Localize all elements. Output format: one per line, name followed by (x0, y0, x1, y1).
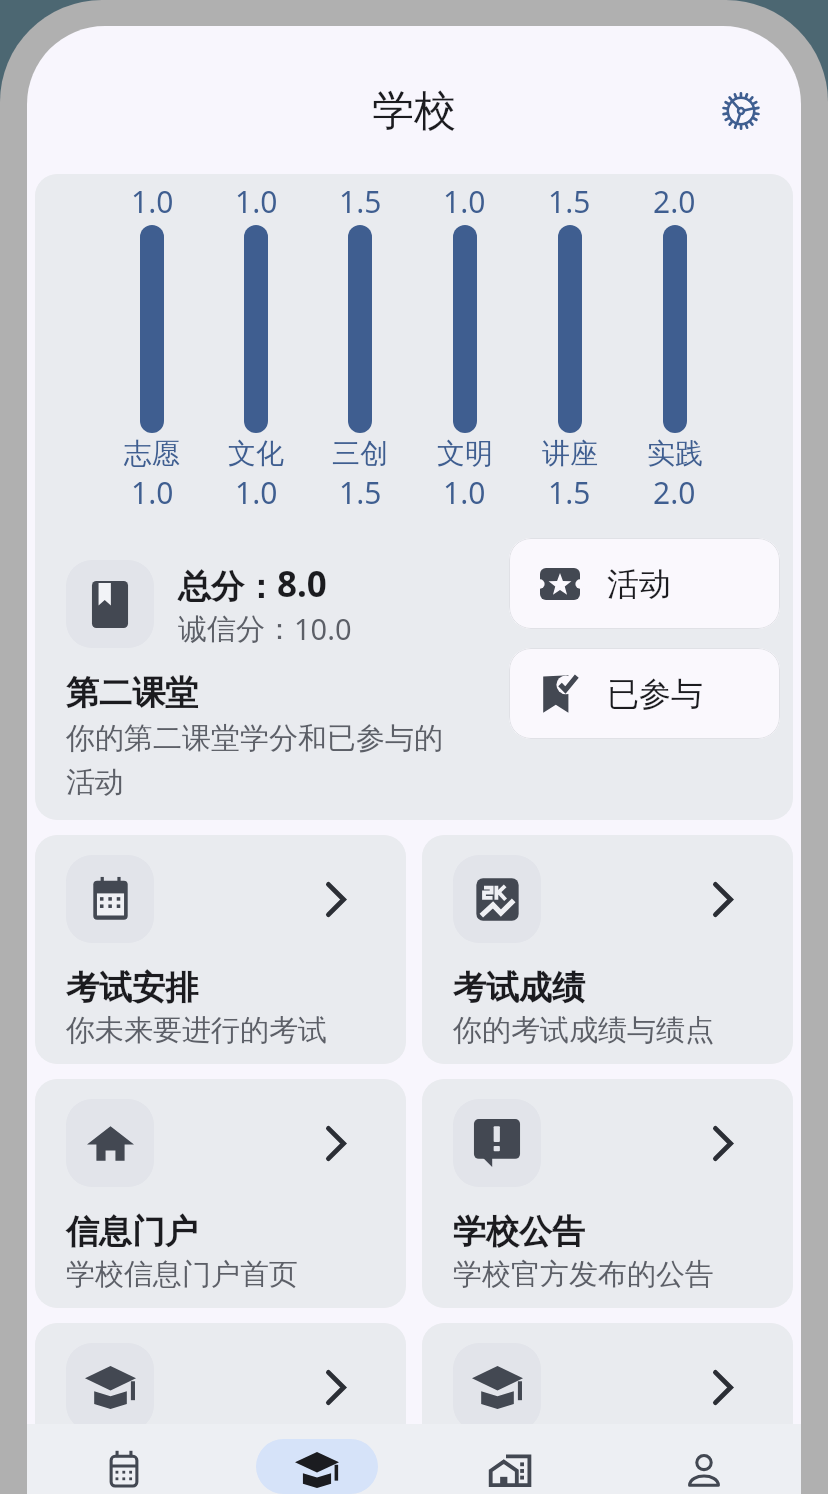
staticText: 文明 (437, 436, 493, 471)
button[interactable]: 教务系统 (35, 1323, 406, 1494)
button[interactable]: 考试成绩 (422, 835, 793, 1064)
staticText: 2.0 (653, 181, 696, 222)
staticText: 文化 (228, 436, 284, 471)
staticText: 三创 (332, 436, 388, 471)
staticText: 已参与 (607, 674, 703, 714)
button[interactable]: 已参与 (509, 648, 780, 739)
staticText: 2.0 (653, 472, 696, 513)
staticText: 你的考试成绩与绩点 (453, 1012, 714, 1049)
staticText: 第二课堂 (66, 672, 198, 714)
staticText: 1.0 (131, 181, 174, 222)
staticText: 1.5 (548, 472, 591, 513)
staticText: 志愿 (124, 436, 180, 471)
staticText: 教务系统 (66, 1455, 198, 1494)
staticText: 学校公告 (453, 1211, 585, 1253)
staticText: 活动 (607, 564, 671, 604)
staticText: 实践 (647, 436, 703, 471)
staticText: 1.0 (131, 472, 174, 513)
staticText: 总分： (178, 566, 277, 608)
button[interactable]: 第二课堂 (422, 1323, 793, 1494)
staticText: 1.0 (235, 181, 278, 222)
staticText: 1.5 (548, 181, 591, 222)
staticText: 讲座 (542, 436, 598, 471)
button[interactable]: 信息门户 (35, 1079, 406, 1308)
staticText: 学校信息门户首页 (66, 1256, 298, 1293)
button[interactable]: 考试安排 (35, 835, 406, 1064)
staticText: 8.0 (277, 560, 327, 608)
button[interactable]: 学校公告 (422, 1079, 793, 1308)
button[interactable]: 活动 (509, 538, 780, 629)
staticText: 1.0 (235, 472, 278, 513)
staticText: 1.0 (443, 472, 486, 513)
button[interactable]: Campus (413, 1424, 607, 1494)
button[interactable]: School (220, 1424, 413, 1494)
button[interactable]: 1.0 (35, 174, 793, 820)
staticText: 你未来要进行的考试 (66, 1012, 327, 1049)
staticText: 第二课堂 (453, 1455, 585, 1494)
staticText: 信息门户 (66, 1211, 198, 1253)
button[interactable]: Profile (607, 1424, 801, 1494)
staticText: 学校 (372, 85, 456, 138)
staticText: 学校官方发布的公告 (453, 1256, 714, 1293)
staticText: 你的第二课堂学分和已参与的活动 (66, 720, 461, 800)
staticText: 1.5 (339, 472, 382, 513)
button[interactable]: Settings (713, 83, 769, 139)
staticText: 考试安排 (66, 967, 198, 1009)
staticText: 考试成绩 (453, 967, 585, 1009)
staticText: 1.0 (443, 181, 486, 222)
staticText: 10.0 (294, 609, 352, 648)
staticText: 1.5 (339, 181, 382, 222)
button[interactable]: Schedule (27, 1424, 220, 1494)
staticText: 诚信分： (178, 611, 294, 648)
